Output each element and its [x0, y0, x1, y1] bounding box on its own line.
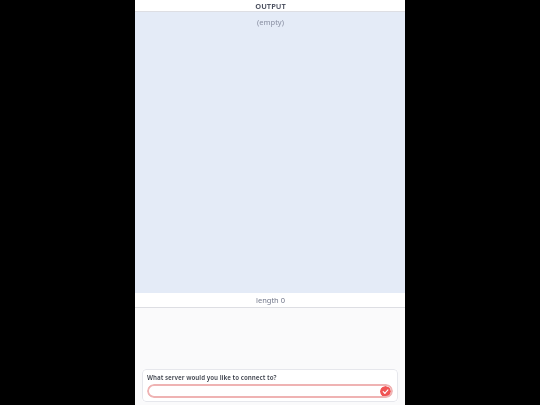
staticText: What server would you like to connect to… [147, 373, 277, 381]
staticText: (empty) [257, 17, 284, 27]
staticText: OUTPUT [255, 1, 286, 11]
button[interactable]: Submit [147, 384, 393, 398]
staticText: length 0 [256, 295, 285, 305]
button[interactable]: Submit [380, 386, 391, 397]
